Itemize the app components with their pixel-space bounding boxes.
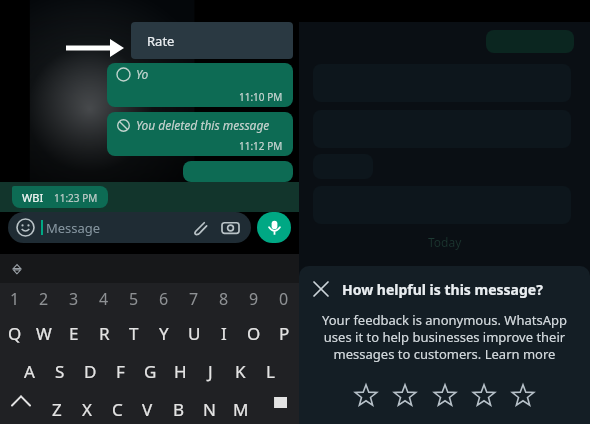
staticText: 11:23 PM bbox=[54, 191, 98, 205]
button[interactable]: Rate 1 star bbox=[351, 381, 381, 411]
button[interactable]: C bbox=[102, 390, 132, 424]
staticText: D bbox=[84, 360, 97, 383]
button[interactable]: N bbox=[194, 390, 225, 424]
button[interactable]: P bbox=[269, 314, 299, 352]
staticText: S bbox=[55, 360, 65, 383]
staticText: 8 bbox=[219, 288, 229, 310]
button[interactable]: Shift bbox=[0, 390, 42, 424]
staticText: E bbox=[69, 322, 79, 345]
staticText: Rate bbox=[147, 32, 175, 50]
staticText: W bbox=[36, 322, 52, 345]
button[interactable]: V bbox=[132, 390, 163, 424]
button[interactable]: Rate 2 star bbox=[390, 381, 420, 411]
staticText: 3 bbox=[69, 288, 79, 310]
button[interactable]: X bbox=[72, 390, 102, 424]
staticText: V bbox=[142, 398, 153, 421]
button[interactable]: You deleted this message bbox=[107, 112, 293, 156]
button[interactable]: 6 bbox=[149, 283, 179, 314]
button[interactable]: R bbox=[89, 314, 119, 352]
staticText: H bbox=[174, 360, 187, 383]
button[interactable]: Rate 4 star bbox=[469, 381, 499, 411]
staticText: I bbox=[221, 322, 227, 345]
button[interactable] bbox=[183, 161, 293, 182]
staticText: C bbox=[112, 398, 123, 421]
staticText: 9 bbox=[249, 288, 259, 310]
staticText: J bbox=[208, 360, 213, 383]
button[interactable]: J bbox=[195, 352, 225, 390]
staticText: Yo bbox=[136, 66, 149, 82]
button[interactable]: S bbox=[45, 352, 75, 390]
button[interactable]: D bbox=[75, 352, 105, 390]
staticText: 1 bbox=[10, 288, 20, 310]
staticText: 2 bbox=[39, 288, 49, 310]
button[interactable]: Rate bbox=[131, 22, 293, 59]
button[interactable]: Close bbox=[308, 276, 334, 302]
staticText: L bbox=[266, 360, 275, 383]
other: Emoji bbox=[17, 219, 34, 236]
staticText: K bbox=[235, 360, 246, 383]
button[interactable]: Backspace bbox=[256, 390, 299, 424]
staticText: 6 bbox=[159, 288, 169, 310]
button[interactable]: T bbox=[119, 314, 149, 352]
staticText: 5 bbox=[129, 288, 139, 310]
button[interactable]: W bbox=[29, 314, 59, 352]
button[interactable]: WBI bbox=[12, 186, 108, 208]
staticText: N bbox=[203, 398, 216, 421]
staticText: P bbox=[279, 322, 290, 345]
button[interactable]: 4 bbox=[89, 283, 119, 314]
staticText: T bbox=[129, 322, 139, 345]
button[interactable]: Record voice message bbox=[257, 212, 291, 243]
button[interactable]: Emoji bbox=[8, 212, 251, 243]
button[interactable]: G bbox=[135, 352, 165, 390]
staticText: Your feedback is anonymous. WhatsApp use… bbox=[310, 311, 579, 363]
staticText: B bbox=[173, 398, 185, 421]
button[interactable]: A bbox=[14, 352, 45, 390]
staticText: You deleted this message bbox=[136, 117, 270, 133]
staticText: G bbox=[144, 360, 157, 383]
button[interactable]: L bbox=[255, 352, 285, 390]
staticText: How helpful is this message? bbox=[342, 280, 543, 299]
staticText: 0 bbox=[279, 288, 289, 310]
staticText: Today bbox=[428, 234, 462, 250]
staticText: Y bbox=[159, 322, 169, 345]
staticText: 11:12 PM bbox=[239, 139, 283, 153]
button[interactable]: 8 bbox=[209, 283, 239, 314]
staticText: U bbox=[188, 322, 201, 345]
button[interactable]: 9 bbox=[239, 283, 269, 314]
button[interactable]: 7 bbox=[179, 283, 209, 314]
staticText: 4 bbox=[99, 288, 109, 310]
button[interactable]: B bbox=[163, 390, 194, 424]
button[interactable]: F bbox=[105, 352, 135, 390]
staticText: Message bbox=[46, 219, 101, 237]
button[interactable]: Y bbox=[149, 314, 179, 352]
staticText: WBI bbox=[22, 190, 44, 205]
button[interactable]: O bbox=[239, 314, 269, 352]
button[interactable]: Z bbox=[42, 390, 72, 424]
button[interactable]: 2 bbox=[29, 283, 59, 314]
button[interactable]: Rate 3 star bbox=[430, 381, 460, 411]
button[interactable]: H bbox=[165, 352, 195, 390]
button[interactable]: 0 bbox=[269, 283, 299, 314]
staticText: 11:10 PM bbox=[239, 90, 283, 104]
button[interactable]: E bbox=[59, 314, 89, 352]
button[interactable]: U bbox=[179, 314, 209, 352]
button[interactable]: Yo bbox=[107, 63, 293, 107]
button[interactable]: Expand suggestions bbox=[10, 262, 24, 276]
staticText: R bbox=[99, 322, 110, 345]
button[interactable]: 1 bbox=[0, 283, 29, 314]
staticText: M bbox=[233, 398, 249, 421]
button[interactable]: I bbox=[209, 314, 239, 352]
button[interactable]: K bbox=[225, 352, 255, 390]
staticText: O bbox=[247, 322, 261, 345]
staticText: Q bbox=[8, 322, 22, 345]
button[interactable]: M bbox=[225, 390, 256, 424]
button[interactable]: 5 bbox=[119, 283, 149, 314]
staticText: A bbox=[24, 360, 35, 383]
other: Camera bbox=[222, 219, 239, 236]
button[interactable]: Rate 5 star bbox=[508, 381, 538, 411]
button[interactable]: Q bbox=[0, 314, 29, 352]
button[interactable]: 3 bbox=[59, 283, 89, 314]
other: Attach bbox=[191, 219, 208, 236]
staticText: Z bbox=[52, 398, 62, 421]
staticText: F bbox=[116, 360, 125, 383]
